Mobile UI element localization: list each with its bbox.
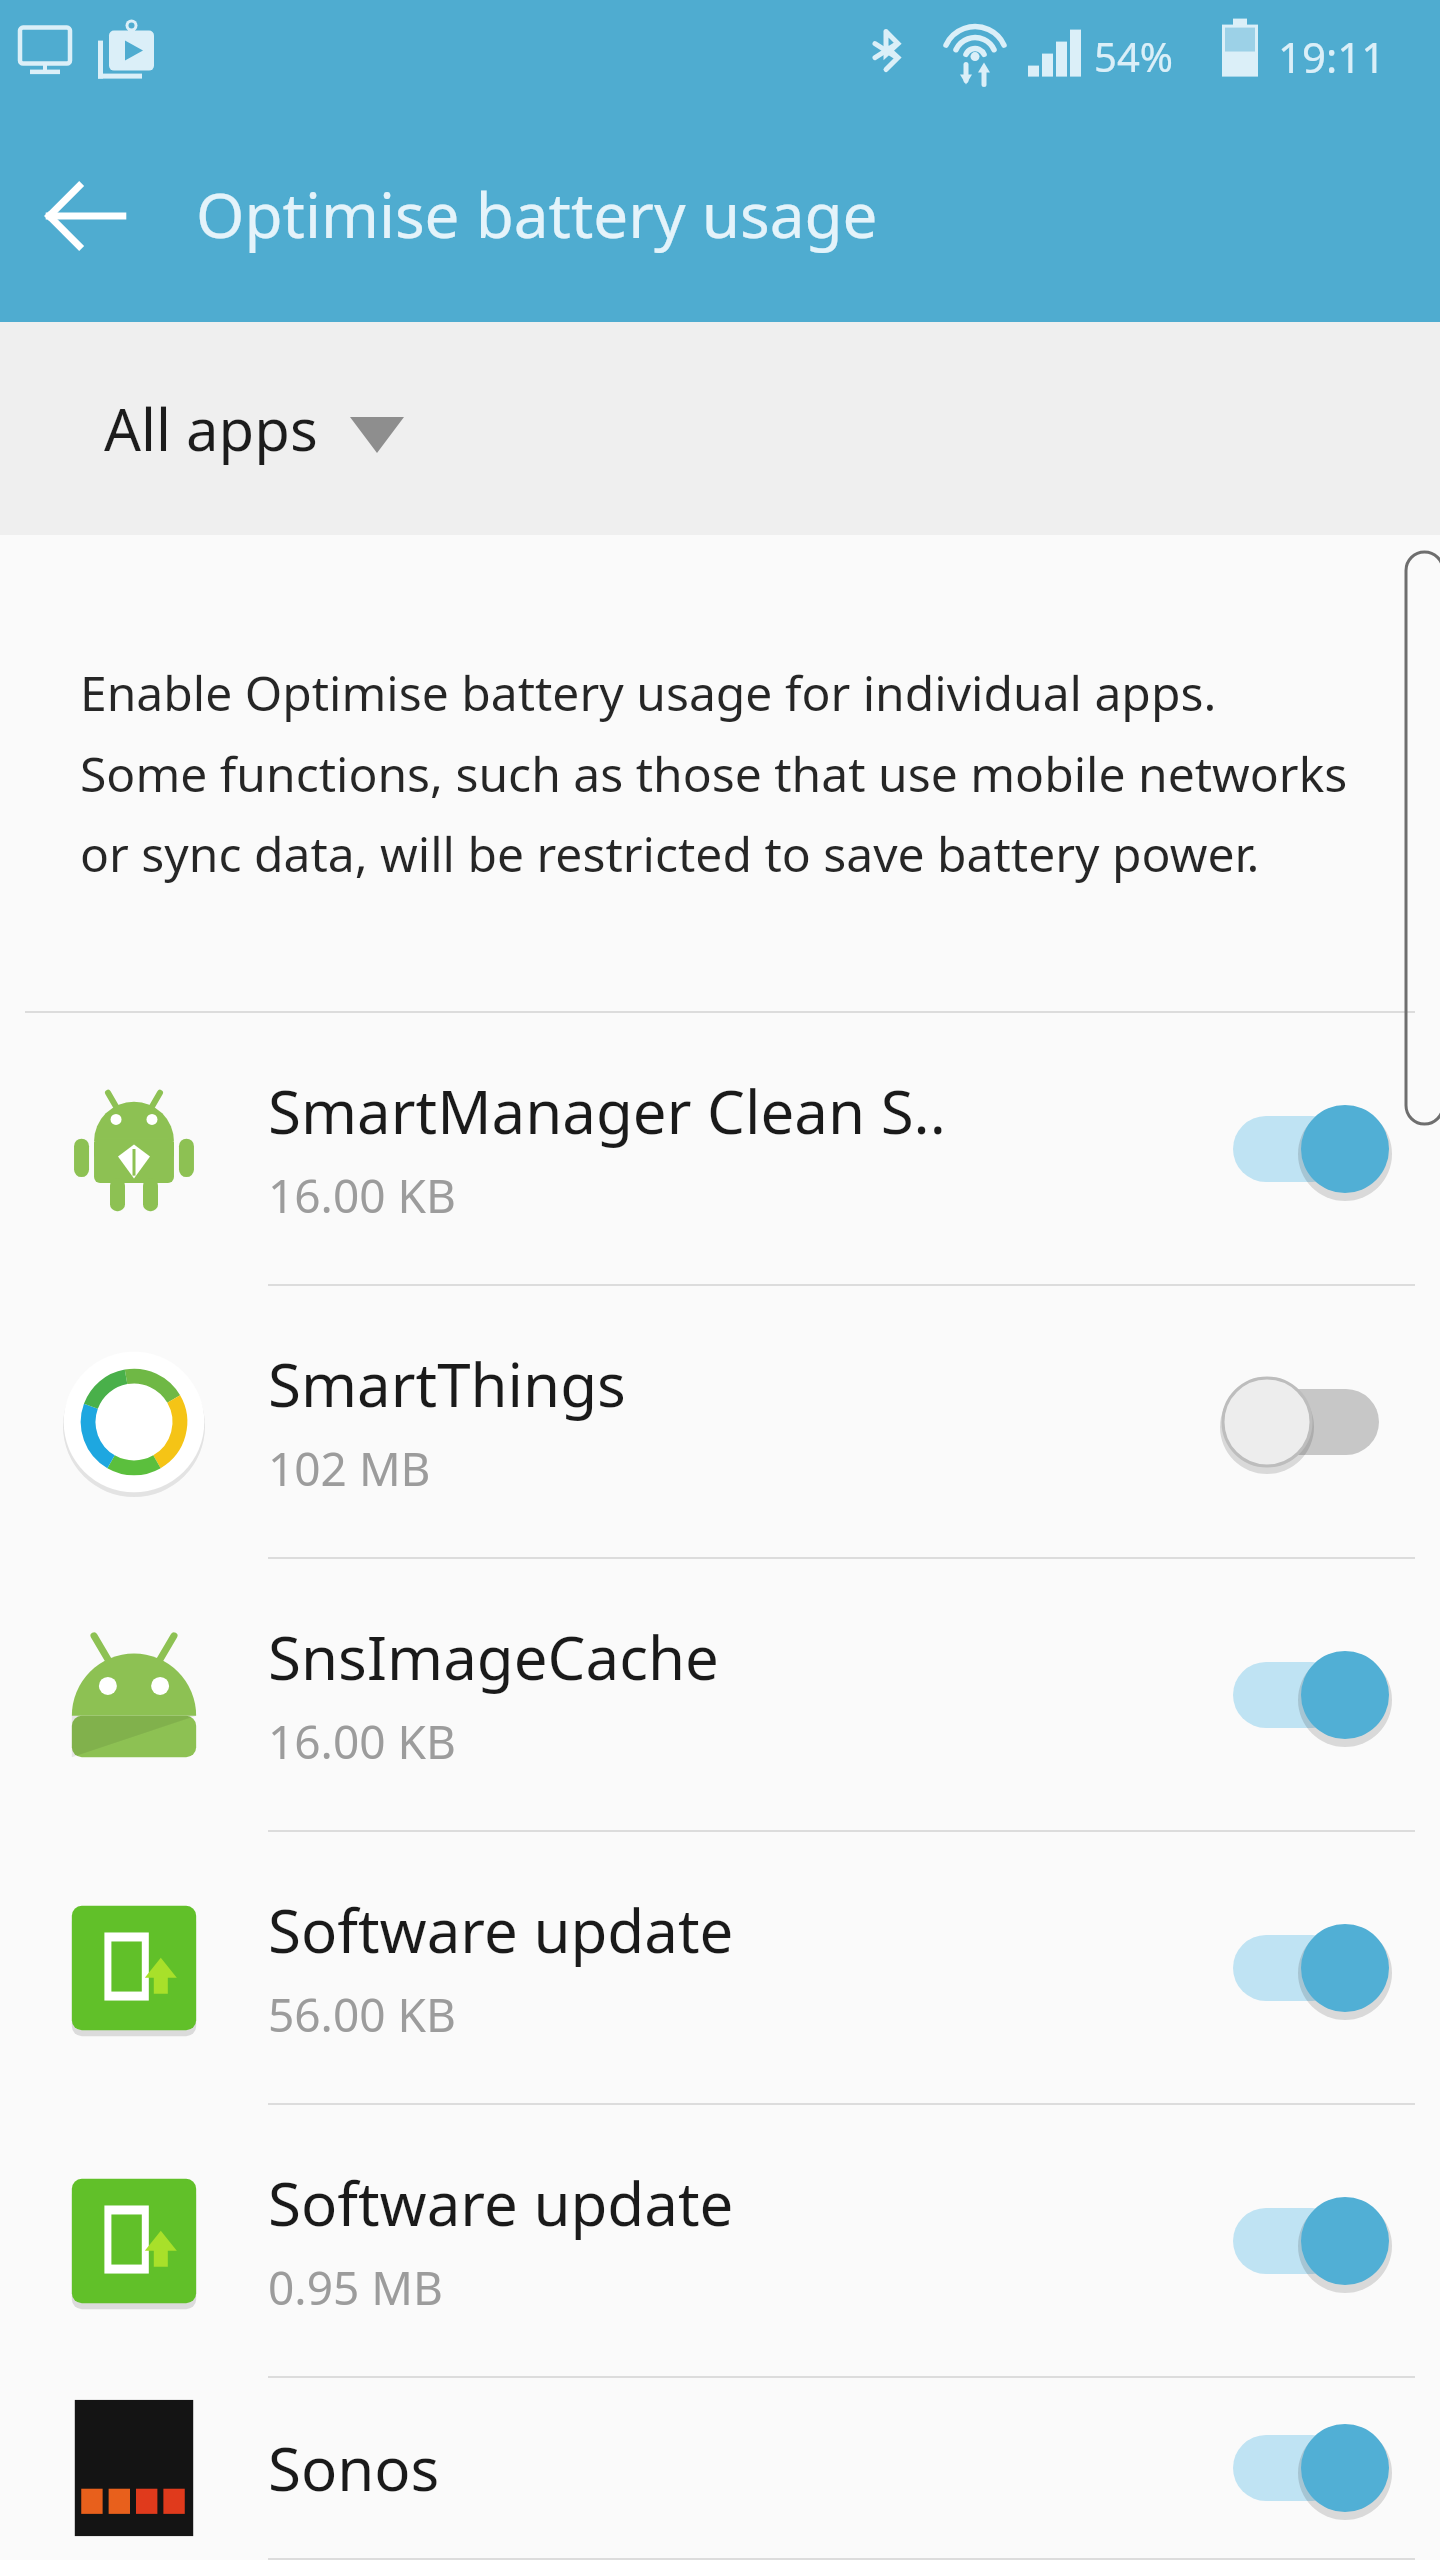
staticText: 102 MB <box>268 1437 431 1500</box>
staticText: SnsImageCache <box>268 1616 719 1698</box>
button[interactable]: Toggle on <box>1221 1101 1391 1197</box>
staticText: 0.95 MB <box>268 2256 443 2319</box>
button[interactable]: Toggle on <box>1221 2420 1391 2516</box>
staticText: 16.00 KB <box>268 1710 456 1773</box>
button[interactable]: Sonos <box>0 2378 1440 2560</box>
button[interactable]: Toggle on <box>1221 1647 1391 1743</box>
button[interactable]: Software update <box>0 1832 1440 2105</box>
button[interactable]: Toggle on <box>1221 1920 1391 2016</box>
button[interactable]: SmartManager Clean S.. <box>0 1013 1440 1286</box>
button[interactable]: Toggle on <box>1221 2193 1391 2289</box>
staticText: 16.00 KB <box>268 1164 456 1227</box>
button[interactable]: SmartThings <box>0 1286 1440 1559</box>
staticText: 54% <box>1094 29 1173 83</box>
staticText: 56.00 KB <box>268 1983 456 2046</box>
button[interactable]: Back <box>40 170 132 262</box>
button[interactable]: SnsImageCache <box>0 1559 1440 1832</box>
staticText: Sonos <box>268 2427 440 2509</box>
button[interactable]: Toggle off <box>1221 1374 1391 1470</box>
staticText: 19:11 <box>1278 28 1386 85</box>
button[interactable]: Software update <box>0 2105 1440 2378</box>
staticText: Software update <box>268 1889 734 1971</box>
staticText: SmartThings <box>268 1343 626 1425</box>
staticText: All apps <box>104 389 318 468</box>
button[interactable]: All apps <box>0 322 1440 535</box>
staticText: SmartManager Clean S.. <box>268 1070 946 1152</box>
staticText: Enable Optimise battery usage for indivi… <box>80 660 1352 886</box>
staticText: Software update <box>268 2162 734 2244</box>
staticText: Optimise battery usage <box>196 172 878 256</box>
